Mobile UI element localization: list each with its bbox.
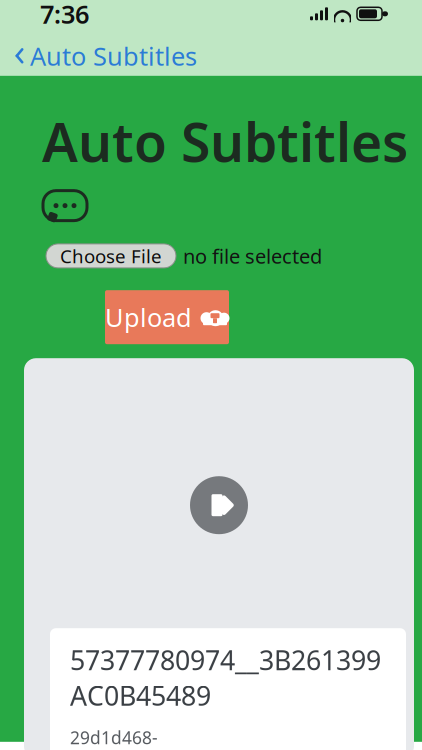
button[interactable]: Choose File (46, 244, 176, 268)
staticText: Auto Subtitles (30, 39, 197, 73)
button[interactable]: Upload (105, 290, 229, 344)
staticText: 29d1d468-a8cb-4c4e-90d3-04566436cdd2 / (70, 726, 337, 750)
staticText: 7:36 (40, 0, 89, 31)
staticText: no file selected (183, 243, 322, 269)
button[interactable]: Auto Subtitles (0, 33, 211, 79)
staticText: 57377780974__3B261399AC0B45489 (70, 642, 381, 713)
staticText: Upload (105, 300, 192, 334)
staticText: Auto Subtitles (42, 106, 408, 177)
staticText: Choose File (60, 243, 162, 268)
button[interactable]: Play (190, 476, 248, 534)
